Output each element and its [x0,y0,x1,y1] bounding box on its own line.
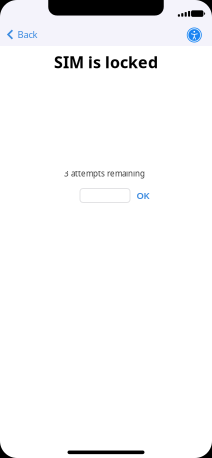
button[interactable]: Back [0,21,46,47]
staticText: Back [17,28,37,41]
staticText: SIM is locked [54,51,158,73]
button[interactable]: OK [136,188,150,202]
staticText: 3 attempts remaining [64,168,145,179]
button[interactable]: Accessibility [181,22,207,48]
staticText: OK [136,189,149,202]
